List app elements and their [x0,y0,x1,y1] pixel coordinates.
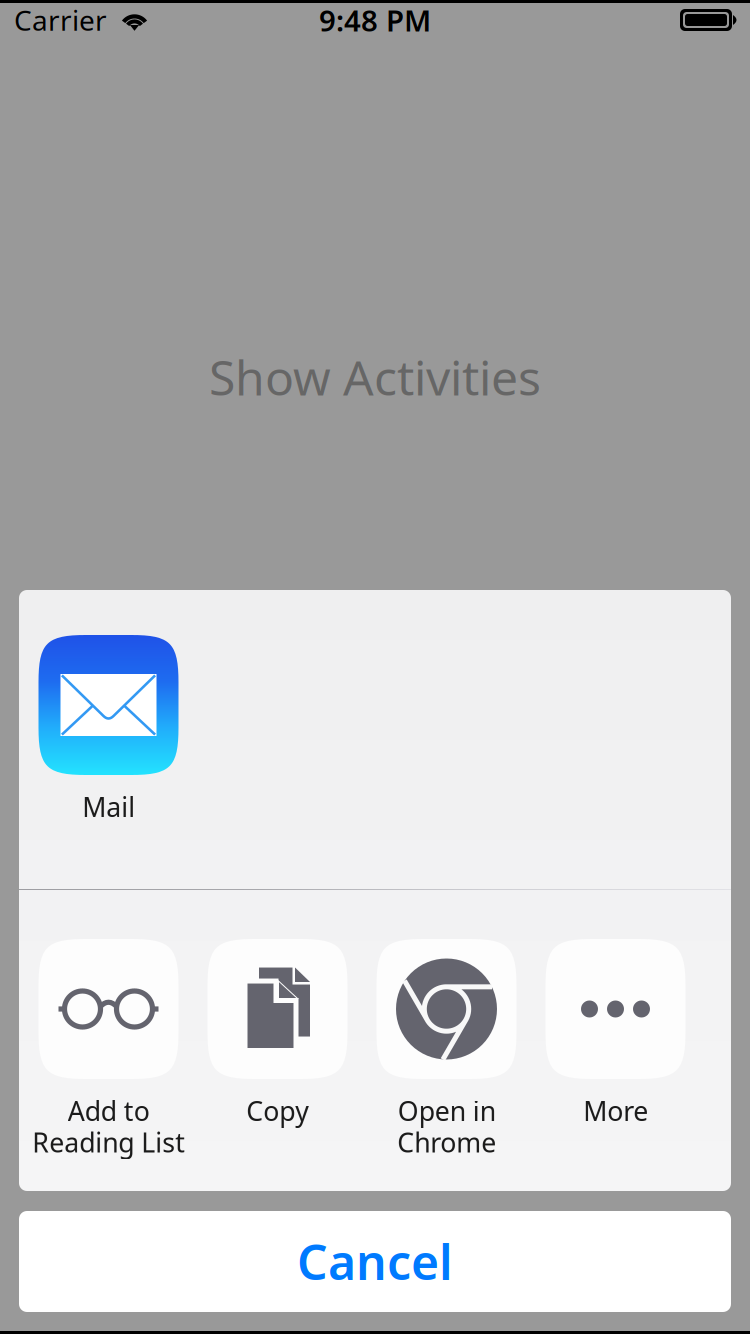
button[interactable]: More [531,939,700,1174]
staticText: Add to Reading List [32,1093,185,1160]
button[interactable]: Cancel [19,1211,731,1312]
button[interactable]: Mail [24,635,193,889]
staticText: More [583,1093,648,1128]
staticText: 9:48 PM [319,0,431,39]
staticText: Mail [82,789,135,824]
staticText: Open in Chrome [397,1093,496,1160]
staticText: Show Activities [209,345,541,409]
button[interactable]: Show Activities [0,337,750,417]
staticText: Carrier [14,1,107,39]
button[interactable]: Add to Reading List [24,939,193,1174]
staticText: Copy [246,1093,309,1128]
button[interactable]: Copy [193,939,362,1174]
staticText: Cancel [297,1230,453,1293]
button[interactable]: Open in Chrome [362,939,531,1174]
